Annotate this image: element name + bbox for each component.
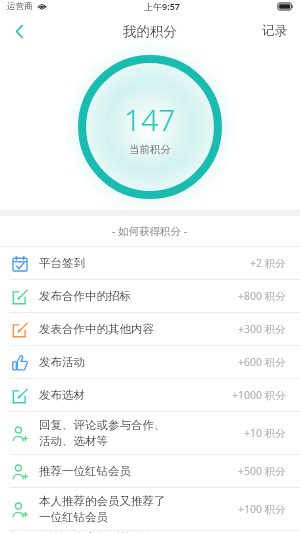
staticText: 发布选材 bbox=[39, 388, 85, 402]
button[interactable]: 发布合作中的招标 bbox=[0, 280, 300, 312]
staticText: +300 积分 bbox=[238, 322, 286, 336]
staticText: 我的积分 bbox=[123, 23, 177, 40]
staticText: 记录 bbox=[262, 23, 287, 39]
staticText: 一位红钻会员 bbox=[39, 510, 108, 524]
button[interactable]: Back bbox=[0, 18, 38, 44]
button[interactable]: 发布选材 bbox=[0, 379, 300, 411]
staticText: 发布的内容收到其他会员 bbox=[39, 531, 166, 533]
staticText: 当前积分 bbox=[129, 143, 171, 156]
staticText: +500 积分 bbox=[238, 464, 286, 478]
staticText: 回复、评论或参与合作、 bbox=[39, 418, 166, 432]
staticText: +2 积分 bbox=[250, 256, 286, 270]
staticText: +100 积分 bbox=[238, 502, 286, 516]
button[interactable]: 回复、评论或参与合作、 bbox=[0, 412, 300, 454]
button[interactable]: 发表合作中的其他内容 bbox=[0, 313, 300, 345]
staticText: - 如何获得积分 - bbox=[112, 224, 188, 238]
staticText: +10 积分 bbox=[244, 426, 286, 440]
button[interactable]: 推荐一位红钻会员 bbox=[0, 455, 300, 487]
staticText: 发表合作中的其他内容 bbox=[39, 322, 154, 336]
button[interactable]: 平台签到 bbox=[0, 247, 300, 279]
staticText: 运营商 bbox=[7, 1, 33, 12]
button[interactable]: 发布的内容收到其他会员 bbox=[0, 531, 300, 533]
staticText: 活动、选材等 bbox=[39, 434, 108, 448]
staticText: +600 积分 bbox=[238, 355, 286, 369]
staticText: +800 积分 bbox=[238, 289, 286, 303]
staticText: 147 bbox=[124, 99, 176, 140]
staticText: 发布活动 bbox=[39, 355, 85, 369]
staticText: +1000 积分 bbox=[232, 388, 286, 402]
staticText: 平台签到 bbox=[39, 256, 85, 270]
staticText: 上午9:57 bbox=[144, 0, 180, 12]
staticText: 本人推荐的会员又推荐了 bbox=[39, 494, 166, 508]
button[interactable]: 记录 bbox=[249, 18, 300, 44]
staticText: 发布合作中的招标 bbox=[39, 289, 131, 303]
button[interactable]: 本人推荐的会员又推荐了 bbox=[0, 488, 300, 530]
button[interactable]: 发布活动 bbox=[0, 346, 300, 378]
staticText: 推荐一位红钻会员 bbox=[39, 464, 131, 478]
